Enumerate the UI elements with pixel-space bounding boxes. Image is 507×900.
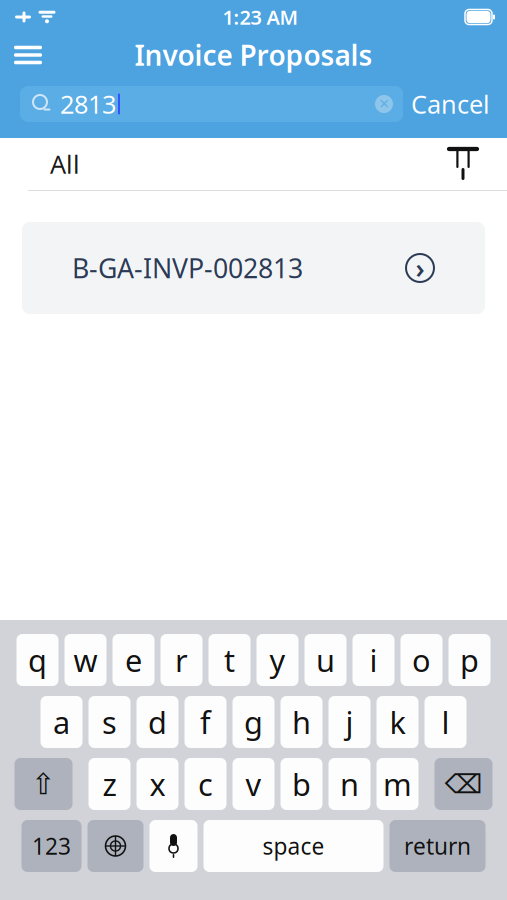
button[interactable]: q (16, 634, 58, 686)
staticText: f (200, 702, 211, 742)
button[interactable]: b (280, 758, 322, 810)
staticText: ⇧ (31, 767, 56, 801)
button[interactable]: return (389, 820, 485, 872)
staticText: j (345, 702, 353, 742)
button[interactable]: t (208, 634, 250, 686)
button[interactable]: w (64, 634, 106, 686)
button[interactable]: Clear search (375, 89, 403, 119)
staticText: space (262, 831, 324, 861)
button[interactable]: i (352, 634, 394, 686)
staticText: 1:23 AM (222, 4, 298, 30)
button[interactable]: space (203, 820, 383, 872)
button[interactable]: v (232, 758, 274, 810)
button[interactable]: y (256, 634, 298, 686)
staticText: x (149, 764, 165, 804)
button[interactable]: Cancel (403, 81, 498, 127)
staticText: 123 (32, 831, 71, 861)
button[interactable]: Dictation (149, 820, 197, 872)
button[interactable]: All (0, 139, 80, 189)
button[interactable]: a (40, 696, 82, 748)
staticText: B-GA-INVP-002813 (72, 250, 303, 286)
staticText: t (224, 640, 235, 680)
button[interactable]: Delete (434, 758, 492, 810)
staticText: ⌫ (444, 769, 482, 799)
staticText: k (389, 702, 405, 742)
button[interactable]: Change keyboard (87, 820, 143, 872)
staticText: i (369, 640, 377, 680)
staticText: return (404, 831, 471, 861)
staticText: d (148, 702, 167, 742)
button[interactable]: Numbers (21, 820, 81, 872)
staticText: u (316, 640, 335, 680)
button[interactable]: h (280, 696, 322, 748)
button[interactable]: d (136, 696, 178, 748)
staticText: r (175, 640, 188, 680)
button[interactable]: n (328, 758, 370, 810)
button[interactable]: r (160, 634, 202, 686)
staticText: › (415, 250, 424, 286)
staticText: Cancel (411, 87, 490, 121)
staticText: p (460, 640, 479, 680)
staticText: ✕ (378, 96, 389, 111)
button[interactable]: e (112, 634, 154, 686)
button[interactable]: c (184, 758, 226, 810)
button[interactable]: m (376, 758, 418, 810)
staticText: e (125, 640, 142, 680)
staticText: a (53, 702, 70, 742)
staticText: o (412, 640, 431, 680)
staticText: g (244, 702, 263, 742)
button[interactable]: z (88, 758, 130, 810)
button[interactable]: x (136, 758, 178, 810)
staticText: s (102, 702, 117, 742)
staticText: w (73, 640, 97, 680)
button[interactable]: Filter (447, 143, 507, 185)
button[interactable]: Menu (0, 36, 56, 74)
button[interactable]: Shift (14, 758, 72, 810)
staticText: l (441, 702, 449, 742)
staticText: h (292, 702, 311, 742)
button[interactable]: k (376, 696, 418, 748)
staticText: 2813 (60, 87, 116, 121)
button[interactable]: j (328, 696, 370, 748)
staticText: q (28, 640, 47, 680)
staticText: z (102, 764, 116, 804)
staticText: m (383, 764, 412, 804)
button[interactable]: f (184, 696, 226, 748)
staticText: All (50, 147, 80, 181)
button[interactable]: o (400, 634, 442, 686)
staticText: v (245, 764, 261, 804)
staticText: n (340, 764, 359, 804)
button[interactable]: g (232, 696, 274, 748)
button[interactable]: B-GA-INVP-002813 (22, 222, 485, 314)
staticText: y (269, 640, 285, 680)
staticText: c (198, 764, 213, 804)
button[interactable]: l (424, 696, 466, 748)
staticText: b (292, 764, 311, 804)
staticText: Invoice Proposals (134, 36, 372, 74)
button[interactable]: s (88, 696, 130, 748)
button[interactable]: u (304, 634, 346, 686)
button[interactable]: p (448, 634, 490, 686)
